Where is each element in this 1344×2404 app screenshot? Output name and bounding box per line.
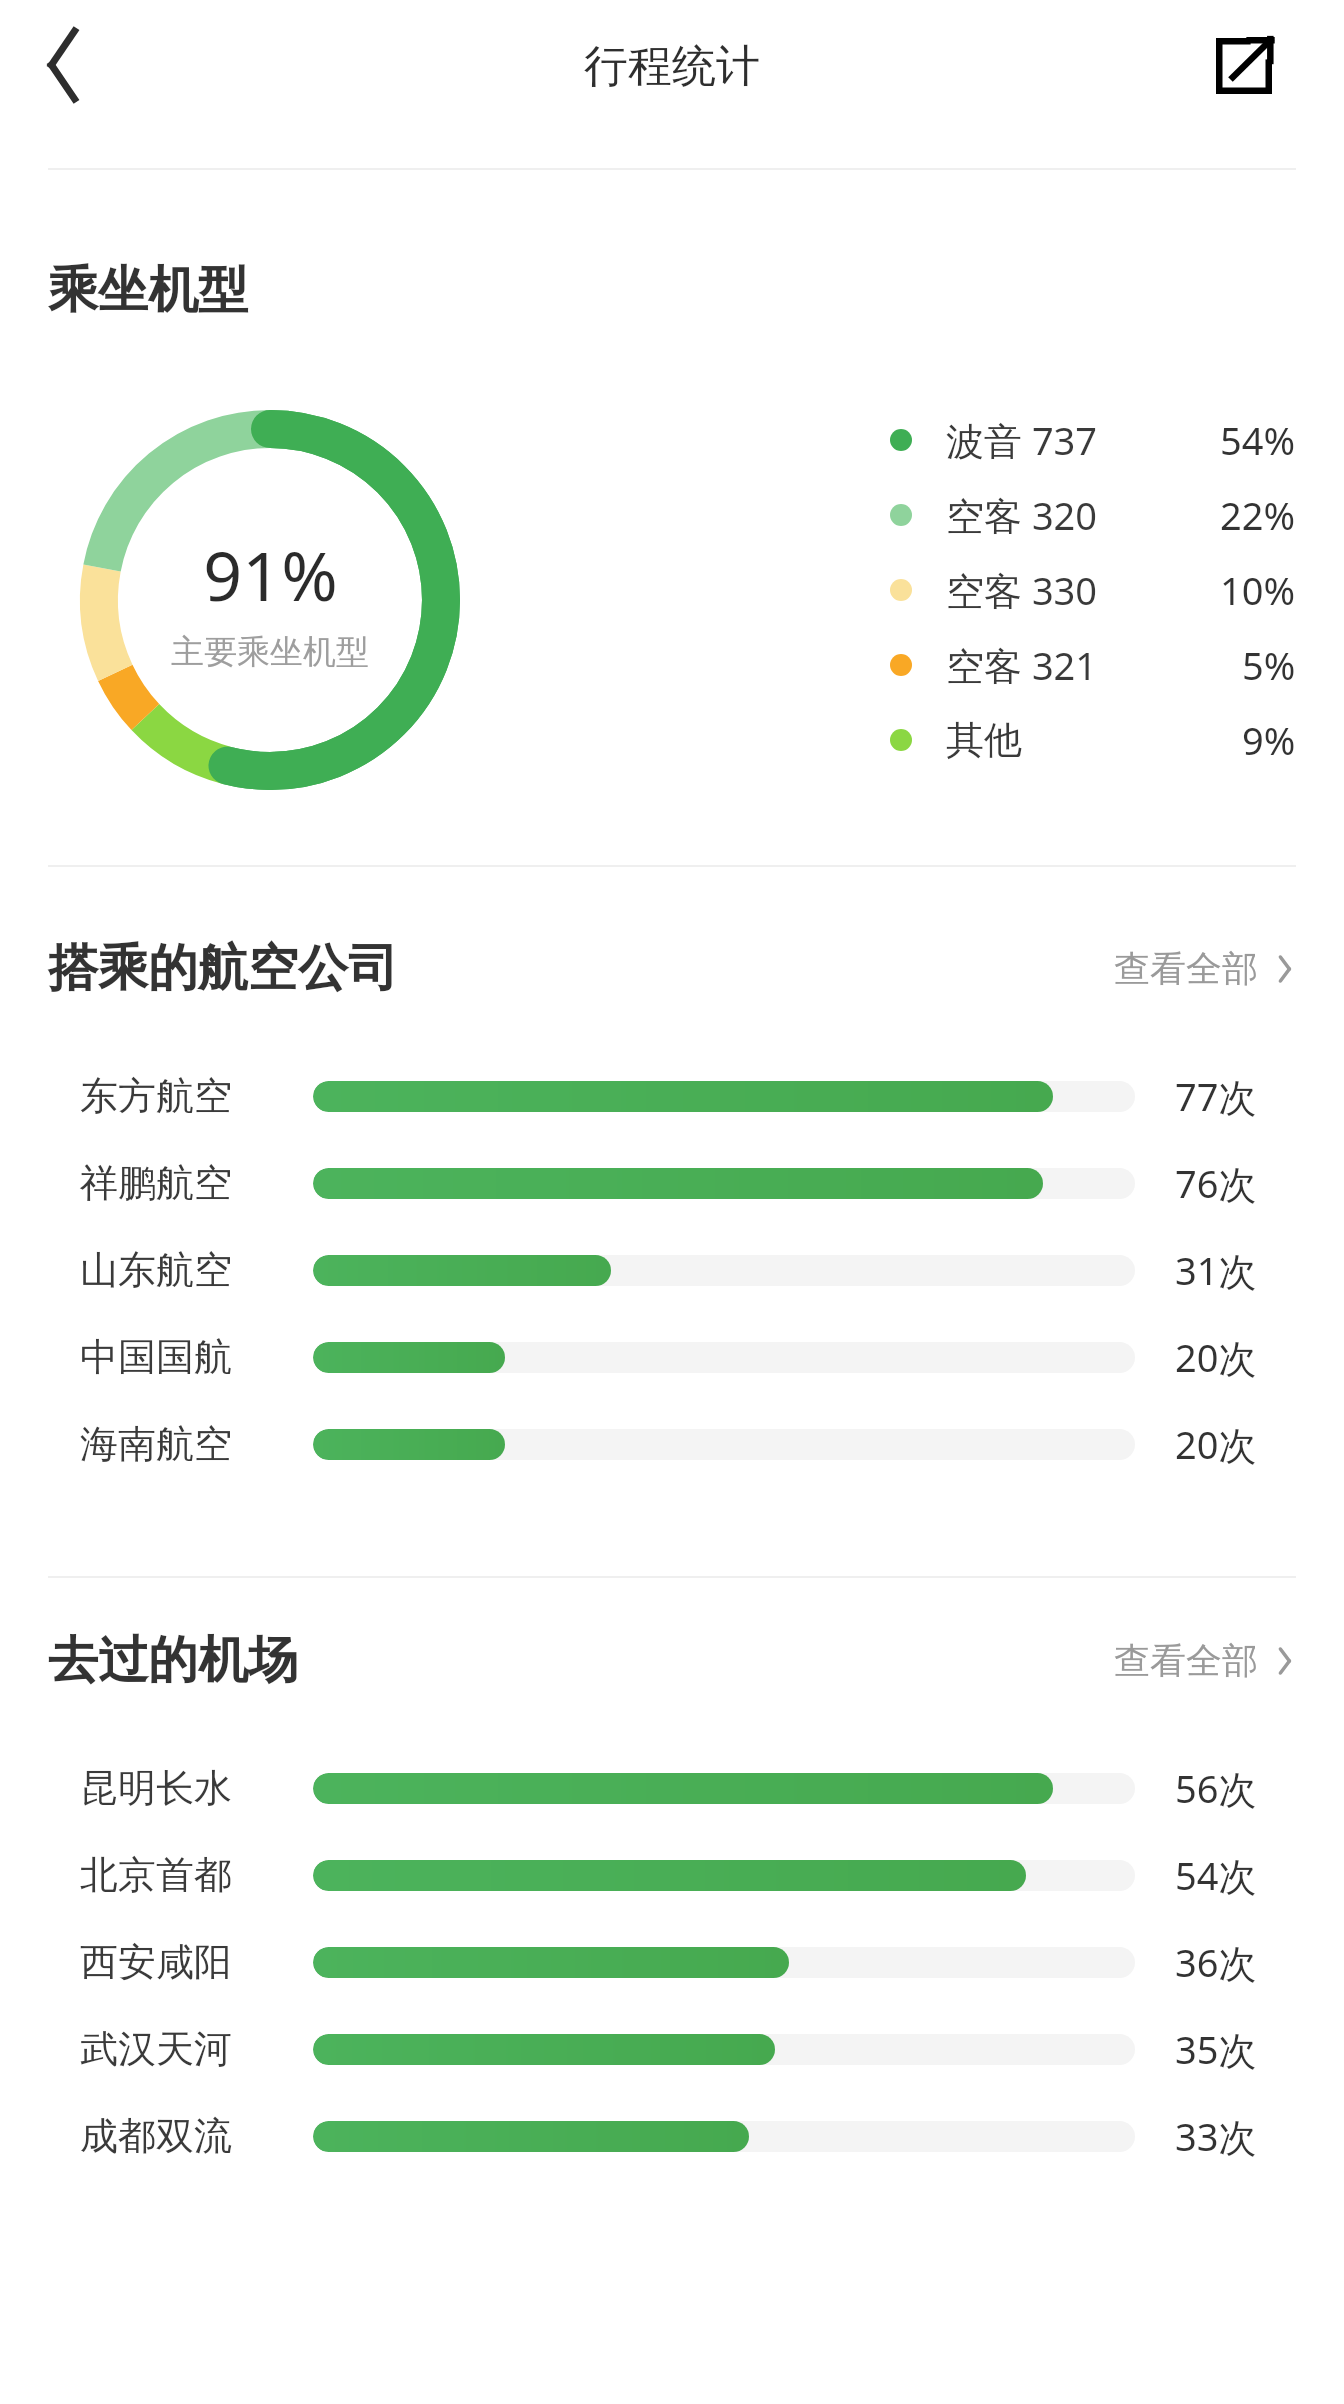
button[interactable]: 空客 320 <box>890 479 1296 551</box>
button[interactable]: Back <box>8 10 118 120</box>
button[interactable]: 成都双流 <box>0 2093 1344 2179</box>
button[interactable]: 海南航空 <box>0 1401 1344 1487</box>
staticText: 空客 330 <box>946 564 1098 616</box>
button[interactable]: 中国国航 <box>0 1314 1344 1400</box>
button[interactable]: 东方航空 <box>0 1053 1344 1139</box>
staticText: 东方航空 <box>80 1072 232 1120</box>
staticText: 9% <box>1242 714 1296 766</box>
button[interactable]: 空客 321 <box>890 629 1296 701</box>
button[interactable]: 查看全部 <box>1040 1624 1296 1696</box>
staticText: 去过的机场 <box>48 1629 298 1692</box>
staticText: 54% <box>1220 414 1296 466</box>
button[interactable]: 波音 737 <box>890 404 1296 476</box>
button[interactable]: Share <box>1190 12 1298 120</box>
button[interactable]: 空客 330 <box>890 554 1296 626</box>
staticText: 77次 <box>1175 1070 1257 1122</box>
staticText: 20次 <box>1175 1331 1257 1383</box>
button[interactable]: 武汉天河 <box>0 2006 1344 2092</box>
button[interactable]: 山东航空 <box>0 1227 1344 1313</box>
staticText: 54次 <box>1175 1849 1257 1901</box>
staticText: 行程统计 <box>584 39 760 94</box>
staticText: 中国国航 <box>80 1333 232 1381</box>
staticText: 查看全部 <box>1114 1638 1258 1683</box>
button[interactable]: 西安咸阳 <box>0 1919 1344 2005</box>
staticText: 76次 <box>1175 1157 1257 1209</box>
staticText: 36次 <box>1175 1936 1257 1988</box>
staticText: 武汉天河 <box>80 2025 232 2073</box>
staticText: 35次 <box>1175 2023 1257 2075</box>
staticText: 33次 <box>1175 2110 1257 2162</box>
staticText: 20次 <box>1175 1418 1257 1470</box>
staticText: 乘坐机型 <box>48 259 248 322</box>
staticText: 10% <box>1220 564 1296 616</box>
button[interactable]: 祥鹏航空 <box>0 1140 1344 1226</box>
staticText: 西安咸阳 <box>80 1938 232 1986</box>
button[interactable]: 其他 <box>890 704 1296 776</box>
staticText: 波音 737 <box>946 414 1098 466</box>
staticText: 5% <box>1242 639 1296 691</box>
staticText: 56次 <box>1175 1762 1257 1814</box>
staticText: 海南航空 <box>80 1420 232 1468</box>
staticText: 其他 <box>946 716 1022 764</box>
button[interactable]: 昆明长水 <box>0 1745 1344 1831</box>
staticText: 成都双流 <box>80 2112 232 2160</box>
button[interactable]: 查看全部 <box>1040 932 1296 1004</box>
button[interactable]: 北京首都 <box>0 1832 1344 1918</box>
staticText: 22% <box>1220 489 1296 541</box>
staticText: 空客 320 <box>946 489 1098 541</box>
staticText: 空客 321 <box>946 639 1098 691</box>
staticText: 查看全部 <box>1114 946 1258 991</box>
staticText: 91% <box>203 528 338 621</box>
staticText: 主要乘坐机型 <box>171 631 369 673</box>
staticText: 祥鹏航空 <box>80 1159 232 1207</box>
staticText: 搭乘的航空公司 <box>48 937 398 1000</box>
staticText: 山东航空 <box>80 1246 232 1294</box>
staticText: 昆明长水 <box>80 1764 232 1812</box>
staticText: 北京首都 <box>80 1851 232 1899</box>
staticText: 31次 <box>1175 1244 1257 1296</box>
